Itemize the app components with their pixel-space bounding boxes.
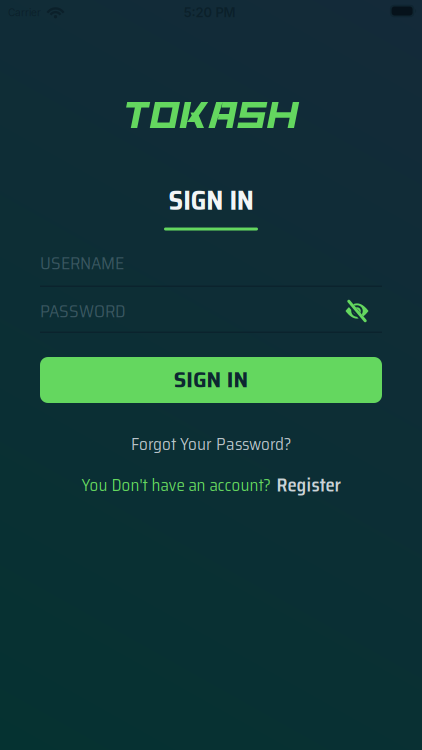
- staticText: PASSWORD: [40, 297, 126, 325]
- staticText: You Don't have an account?: [81, 472, 270, 498]
- staticText: Forgot Your Password?: [131, 430, 291, 458]
- staticText: SIGN IN: [170, 180, 251, 221]
- staticText: Register: [276, 470, 340, 500]
- staticText: 5:20 PM: [183, 5, 235, 20]
- button[interactable]: Show password: [345, 300, 369, 322]
- button[interactable]: You Don't have an account?: [81, 475, 340, 495]
- button[interactable]: Forgot Your Password?: [131, 434, 291, 454]
- staticText: Carrier: [8, 6, 41, 19]
- staticText: SIGN IN: [178, 363, 244, 396]
- staticText: USERNAME: [40, 249, 124, 277]
- button[interactable]: SIGN IN: [40, 357, 382, 403]
- button[interactable]: USERNAME: [40, 257, 382, 287]
- button[interactable]: PASSWORD: [40, 305, 382, 333]
